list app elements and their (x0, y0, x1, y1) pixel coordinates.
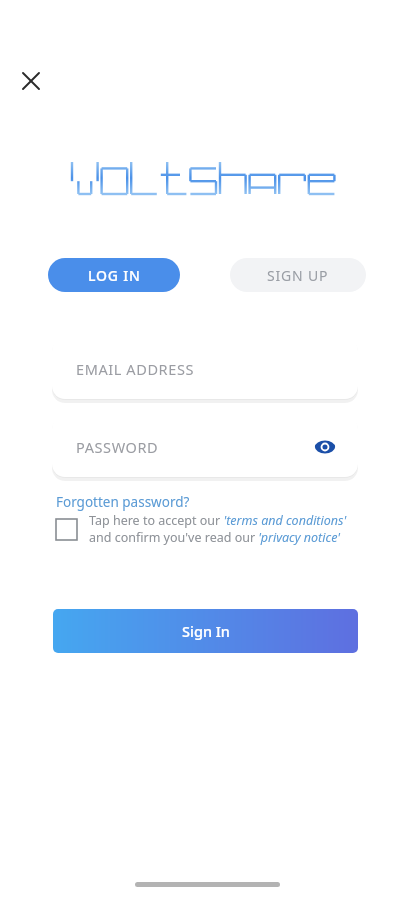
button[interactable]: Close (12, 62, 50, 100)
staticText: LOG IN (88, 266, 141, 285)
staticText: SIGN UP (267, 266, 329, 285)
staticText: Sign In (182, 621, 230, 641)
button[interactable]: PASSWORD (52, 416, 358, 477)
button[interactable]: Sign In (53, 609, 358, 653)
button[interactable]: EMAIL ADDRESS (52, 338, 358, 399)
button[interactable]: LOG IN (48, 258, 180, 292)
staticText: Tap here to accept our 'terms and condit… (89, 512, 362, 546)
button[interactable]: Show password (312, 434, 338, 460)
button[interactable]: SIGN UP (230, 258, 366, 292)
button[interactable]: Tap here to accept our 'terms and condit… (56, 512, 362, 546)
button[interactable]: Forgotten password? (54, 492, 192, 512)
staticText: EMAIL ADDRESS (76, 359, 338, 379)
staticText: Forgotten password? (56, 493, 190, 511)
staticText: PASSWORD (76, 437, 312, 457)
